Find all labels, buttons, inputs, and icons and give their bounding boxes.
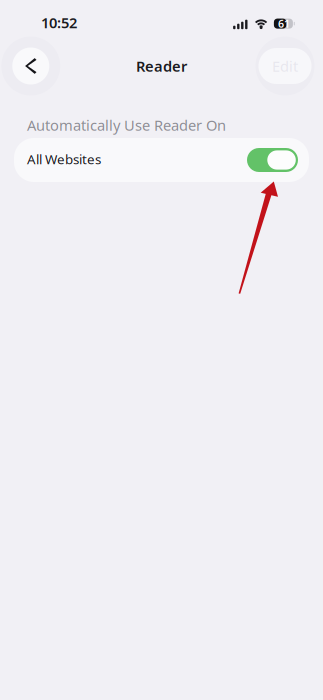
button[interactable]: Back (1, 36, 60, 95)
staticText: 61 (278, 16, 290, 31)
staticText: 10:52 (41, 13, 77, 32)
staticText: Edit (272, 56, 298, 76)
staticText: All Websites (27, 150, 101, 168)
staticText: Automatically Use Reader On (27, 115, 226, 135)
button[interactable]: Edit (255, 36, 314, 95)
staticText: Reader (136, 56, 187, 76)
button[interactable]: All Websites (14, 138, 309, 182)
